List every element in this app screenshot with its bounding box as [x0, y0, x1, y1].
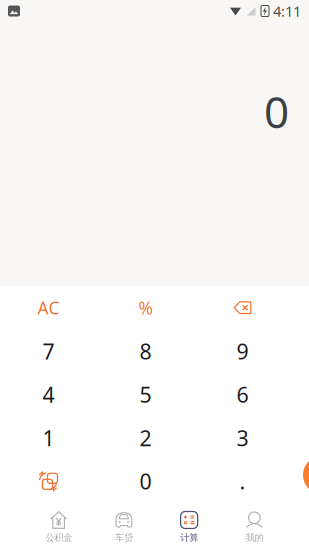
staticText: 9	[236, 337, 248, 365]
staticText: 公积金	[45, 532, 72, 543]
staticText: 6	[236, 380, 248, 409]
staticText: 我的	[245, 532, 263, 543]
staticText: 0	[139, 467, 151, 495]
button[interactable]: 8	[97, 329, 194, 373]
staticText: 4:11	[273, 1, 301, 21]
button[interactable]: 3	[194, 416, 291, 460]
button[interactable]: 0	[97, 460, 194, 503]
staticText: 0	[264, 82, 289, 140]
button[interactable]: Delete	[194, 286, 291, 329]
staticText: 5	[139, 380, 151, 409]
staticText: 1	[42, 424, 54, 452]
staticText: .	[239, 467, 245, 495]
button[interactable]: 9	[194, 329, 291, 373]
button[interactable]: %	[97, 286, 194, 329]
button[interactable]: .	[194, 460, 291, 503]
staticText: 3	[236, 424, 248, 452]
staticText: AC	[37, 296, 59, 319]
staticText: 4	[42, 380, 54, 409]
button[interactable]: AC	[0, 286, 97, 329]
button[interactable]: 车贷	[91, 511, 156, 543]
staticText: 7	[42, 337, 54, 365]
button[interactable]: 我的	[222, 511, 287, 543]
staticText: 8	[139, 337, 151, 365]
staticText: 车贷	[115, 532, 133, 543]
button[interactable]: 公积金	[26, 511, 91, 543]
button[interactable]: 4	[0, 373, 97, 416]
button[interactable]: Equals	[303, 456, 309, 494]
staticText: 计算	[180, 532, 198, 543]
button[interactable]: 7	[0, 329, 97, 373]
button[interactable]: 计算	[156, 511, 222, 543]
button[interactable]: 2	[97, 416, 194, 460]
button[interactable]: 5	[97, 373, 194, 416]
staticText: 2	[139, 424, 151, 452]
button[interactable]: Unit conversion	[0, 460, 97, 503]
staticText: %	[138, 296, 152, 319]
button[interactable]: 1	[0, 416, 97, 460]
button[interactable]: 6	[194, 373, 291, 416]
